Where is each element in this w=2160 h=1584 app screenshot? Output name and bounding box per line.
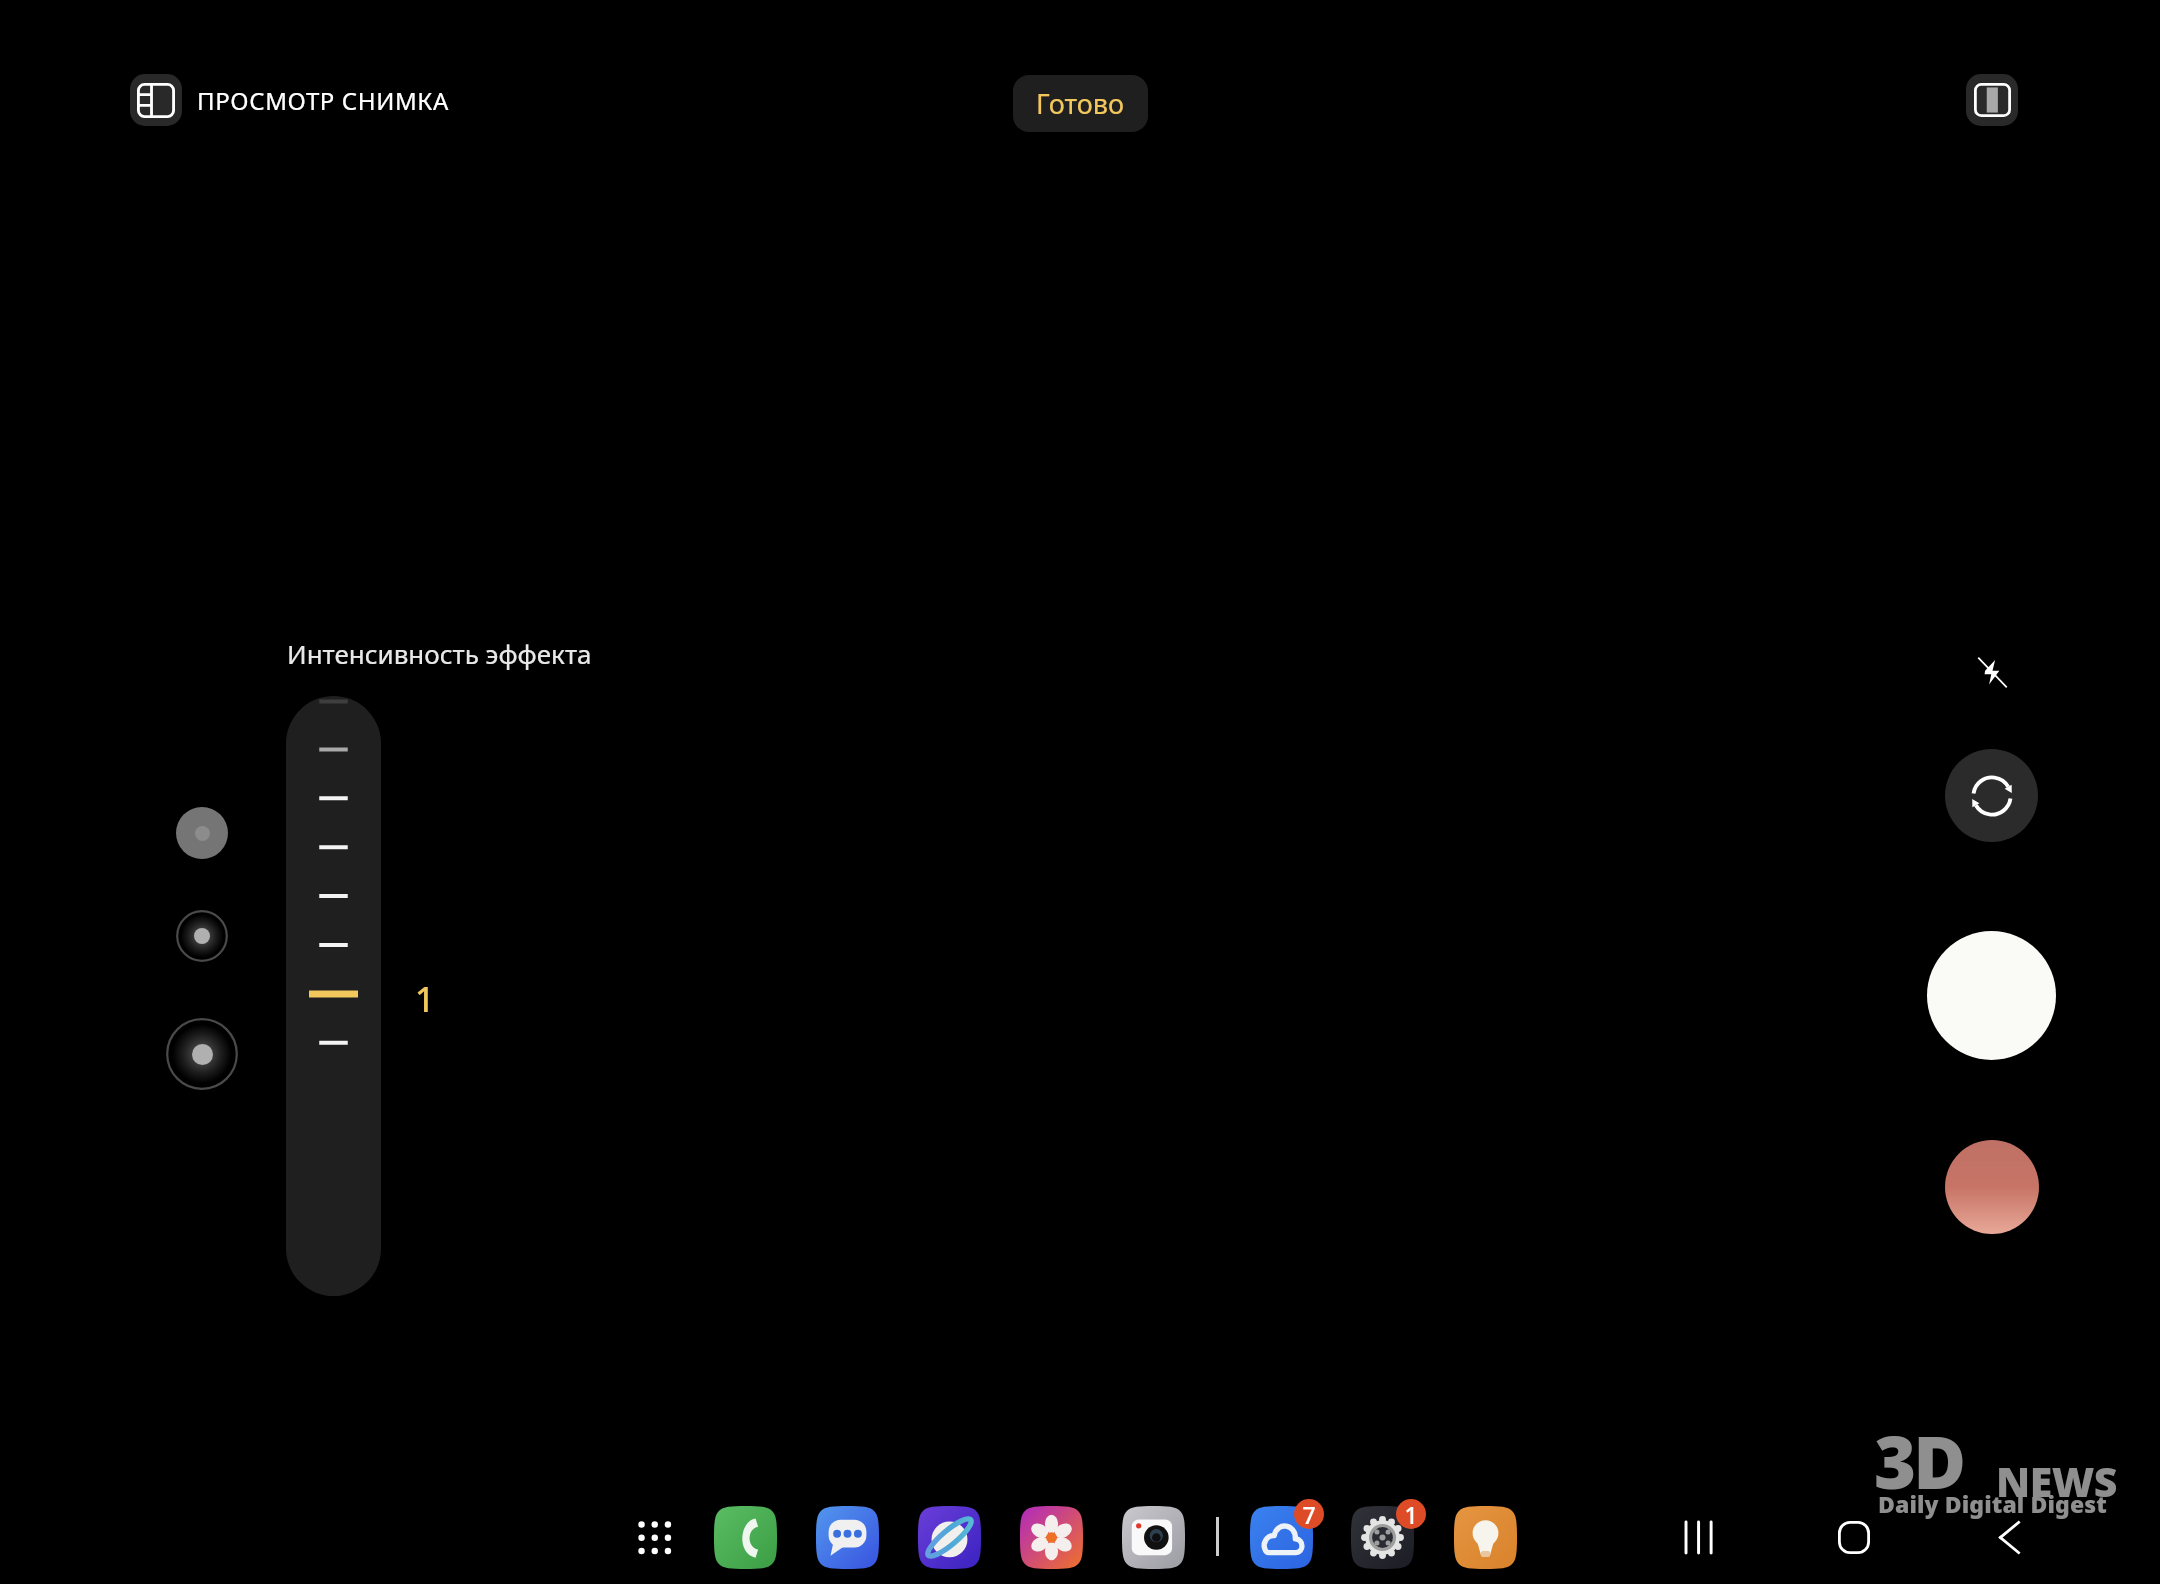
- button[interactable]: Apps: [622, 1505, 686, 1569]
- button[interactable]: App: [714, 1506, 777, 1569]
- staticText: 7: [1302, 1499, 1316, 1529]
- button[interactable]: Switch camera: [1945, 749, 2038, 842]
- button[interactable]: App: [1122, 1506, 1185, 1569]
- staticText: Готово: [1036, 85, 1125, 122]
- button[interactable]: App: [816, 1506, 879, 1569]
- button[interactable]: App: [918, 1506, 981, 1569]
- button[interactable]: ПРОСМОТР СНИМКА: [130, 74, 449, 126]
- button[interactable]: App: [1351, 1506, 1414, 1569]
- button[interactable]: Recents: [1664, 1502, 1734, 1572]
- button[interactable]: Shutter: [1927, 931, 2056, 1060]
- button[interactable]: Bokeh filter: [176, 910, 228, 962]
- button[interactable]: App: [1020, 1506, 1083, 1569]
- staticText: Интенсивность эффекта: [287, 636, 592, 671]
- button[interactable]: Toggle panel: [1966, 74, 2018, 126]
- button[interactable]: Back: [1974, 1502, 2044, 1572]
- staticText: NEWS: [1996, 1453, 2117, 1509]
- button[interactable]: Last photo: [1945, 1140, 2039, 1234]
- button[interactable]: Filter none: [176, 807, 228, 859]
- button[interactable]: Home: [1819, 1502, 1889, 1572]
- staticText: ПРОСМОТР СНИМКА: [197, 84, 449, 117]
- button[interactable]: Flash off: [1961, 641, 2023, 703]
- staticText: Daily Digital Digest: [1878, 1488, 2107, 1519]
- staticText: 1: [1404, 1499, 1418, 1529]
- staticText: 3D: [1874, 1412, 1964, 1506]
- button[interactable]: App: [1454, 1506, 1517, 1569]
- button[interactable]: Bokeh filter: [166, 1018, 238, 1090]
- button[interactable]: Готово: [1013, 75, 1148, 132]
- button[interactable]: Effect intensity: [286, 696, 381, 1296]
- button[interactable]: App: [1250, 1506, 1313, 1569]
- staticText: 1: [415, 976, 435, 1022]
